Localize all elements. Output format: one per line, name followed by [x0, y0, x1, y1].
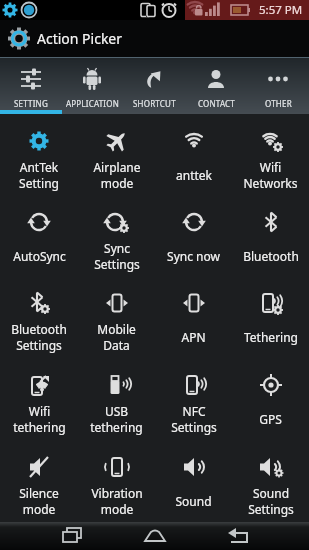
staticText: GPS — [259, 411, 282, 427]
staticText: Tethering — [244, 329, 298, 345]
button[interactable]: AutoSync — [0, 195, 78, 276]
button[interactable]: SETTING — [0, 58, 61, 114]
button[interactable]: Wifi Networks — [232, 114, 309, 195]
staticText: Wifi Networks — [243, 159, 298, 191]
button[interactable]: Vibration mode — [78, 440, 155, 522]
staticText: APPLICATION — [66, 98, 119, 109]
staticText: AntTek Setting — [19, 159, 59, 191]
button[interactable]: anttek — [155, 114, 232, 195]
button[interactable]: GPS — [232, 358, 309, 440]
staticText: Mobile Data — [97, 321, 136, 353]
button[interactable]: Bluetooth — [232, 195, 309, 276]
staticText: APN — [181, 329, 206, 345]
staticText: USB tethering — [90, 403, 143, 435]
button[interactable]: Action Picker — [0, 20, 309, 57]
staticText: Silence mode — [19, 485, 59, 517]
staticText: Action Picker — [37, 29, 123, 48]
button[interactable] — [30, 522, 113, 550]
button[interactable] — [196, 522, 279, 550]
button[interactable]: SHORTCUT — [123, 58, 185, 114]
button[interactable]: Sync Settings — [78, 195, 155, 276]
button[interactable]: NFC Settings — [155, 358, 232, 440]
staticText: SETTING — [14, 98, 48, 109]
staticText: Vibration mode — [91, 485, 143, 517]
button[interactable]: Silence mode — [0, 440, 78, 522]
staticText: OTHER — [265, 98, 292, 109]
button[interactable] — [113, 522, 196, 550]
button[interactable]: Airplane mode — [78, 114, 155, 195]
staticText: Sound Settings — [248, 485, 294, 517]
button[interactable]: Tethering — [232, 276, 309, 358]
button[interactable]: Mobile Data — [78, 276, 155, 358]
staticText: Wifi tethering — [13, 403, 66, 435]
button[interactable]: APPLICATION — [61, 58, 123, 114]
staticText: Sync now — [167, 248, 220, 264]
staticText: CONTACT — [198, 98, 235, 109]
button[interactable]: AntTek Setting — [0, 114, 78, 195]
button[interactable]: Sync now — [155, 195, 232, 276]
staticText: SHORTCUT — [133, 98, 176, 109]
button[interactable]: Sound Settings — [232, 440, 309, 522]
button[interactable]: USB tethering — [78, 358, 155, 440]
staticText: Sound — [175, 493, 212, 509]
staticText: anttek — [176, 167, 212, 183]
button[interactable]: APN — [155, 276, 232, 358]
button[interactable]: Bluetooth Settings — [0, 276, 78, 358]
button[interactable]: OTHER — [247, 58, 309, 114]
staticText: Bluetooth — [243, 248, 299, 264]
button[interactable]: Sound — [155, 440, 232, 522]
staticText: Bluetooth Settings — [11, 321, 67, 353]
staticText: NFC Settings — [171, 403, 217, 435]
staticText: 5:57 PM — [259, 2, 303, 18]
staticText: Sync Settings — [94, 240, 140, 272]
button[interactable]: CONTACT — [185, 58, 247, 114]
staticText: Airplane mode — [93, 159, 141, 191]
staticText: AutoSync — [13, 248, 66, 264]
button[interactable]: Wifi tethering — [0, 358, 78, 440]
